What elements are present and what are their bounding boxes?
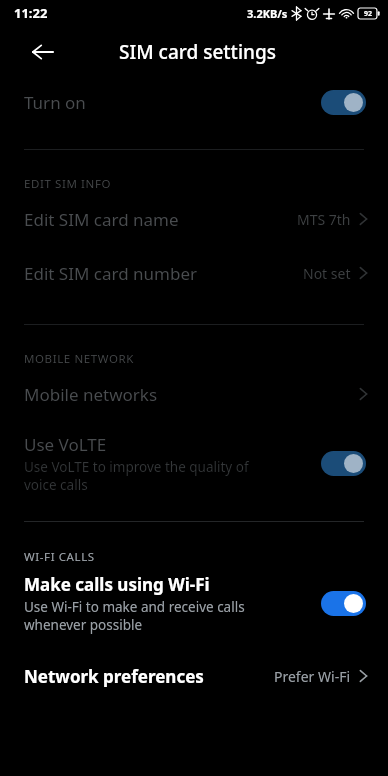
button[interactable]: Network preferences	[0, 651, 388, 701]
staticText: Network preferences	[24, 665, 204, 688]
staticText: Edit SIM card name	[24, 208, 179, 231]
staticText: Turn on	[24, 91, 86, 114]
button[interactable]: Toggle	[321, 90, 366, 115]
staticText: 11:22	[14, 4, 48, 22]
staticText: Make calls using Wi-Fi	[24, 573, 210, 596]
button[interactable]: Edit SIM card number	[0, 246, 388, 300]
button[interactable]: Back	[22, 31, 64, 73]
staticText: 3.2KB/s	[247, 6, 288, 21]
staticText: WI-FI CALLS	[24, 549, 95, 565]
button[interactable]: Toggle	[321, 451, 366, 476]
staticText: MOBILE NETWORK	[24, 351, 134, 367]
staticText: Use Wi-Fi to make and receive calls when…	[24, 598, 266, 634]
staticText: Edit SIM card number	[24, 262, 198, 285]
button[interactable]: Use VoLTE	[0, 427, 388, 499]
staticText: 92	[364, 9, 373, 19]
staticText: SIM card settings	[119, 39, 276, 65]
button[interactable]: Toggle	[321, 591, 366, 616]
staticText: Prefer Wi-Fi	[274, 667, 351, 686]
staticText: Mobile networks	[24, 383, 158, 406]
staticText: EDIT SIM INFO	[24, 176, 112, 192]
button[interactable]: Turn on	[0, 78, 388, 126]
staticText: Use VoLTE	[24, 433, 107, 456]
button[interactable]: Edit SIM card name	[0, 192, 388, 246]
staticText: Not set	[303, 264, 351, 283]
staticText: Use VoLTE to improve the quality of voic…	[24, 458, 266, 494]
button[interactable]: Mobile networks	[0, 367, 388, 421]
button[interactable]: Make calls using Wi-Fi	[0, 565, 388, 641]
staticText: MTS 7th	[297, 210, 351, 229]
